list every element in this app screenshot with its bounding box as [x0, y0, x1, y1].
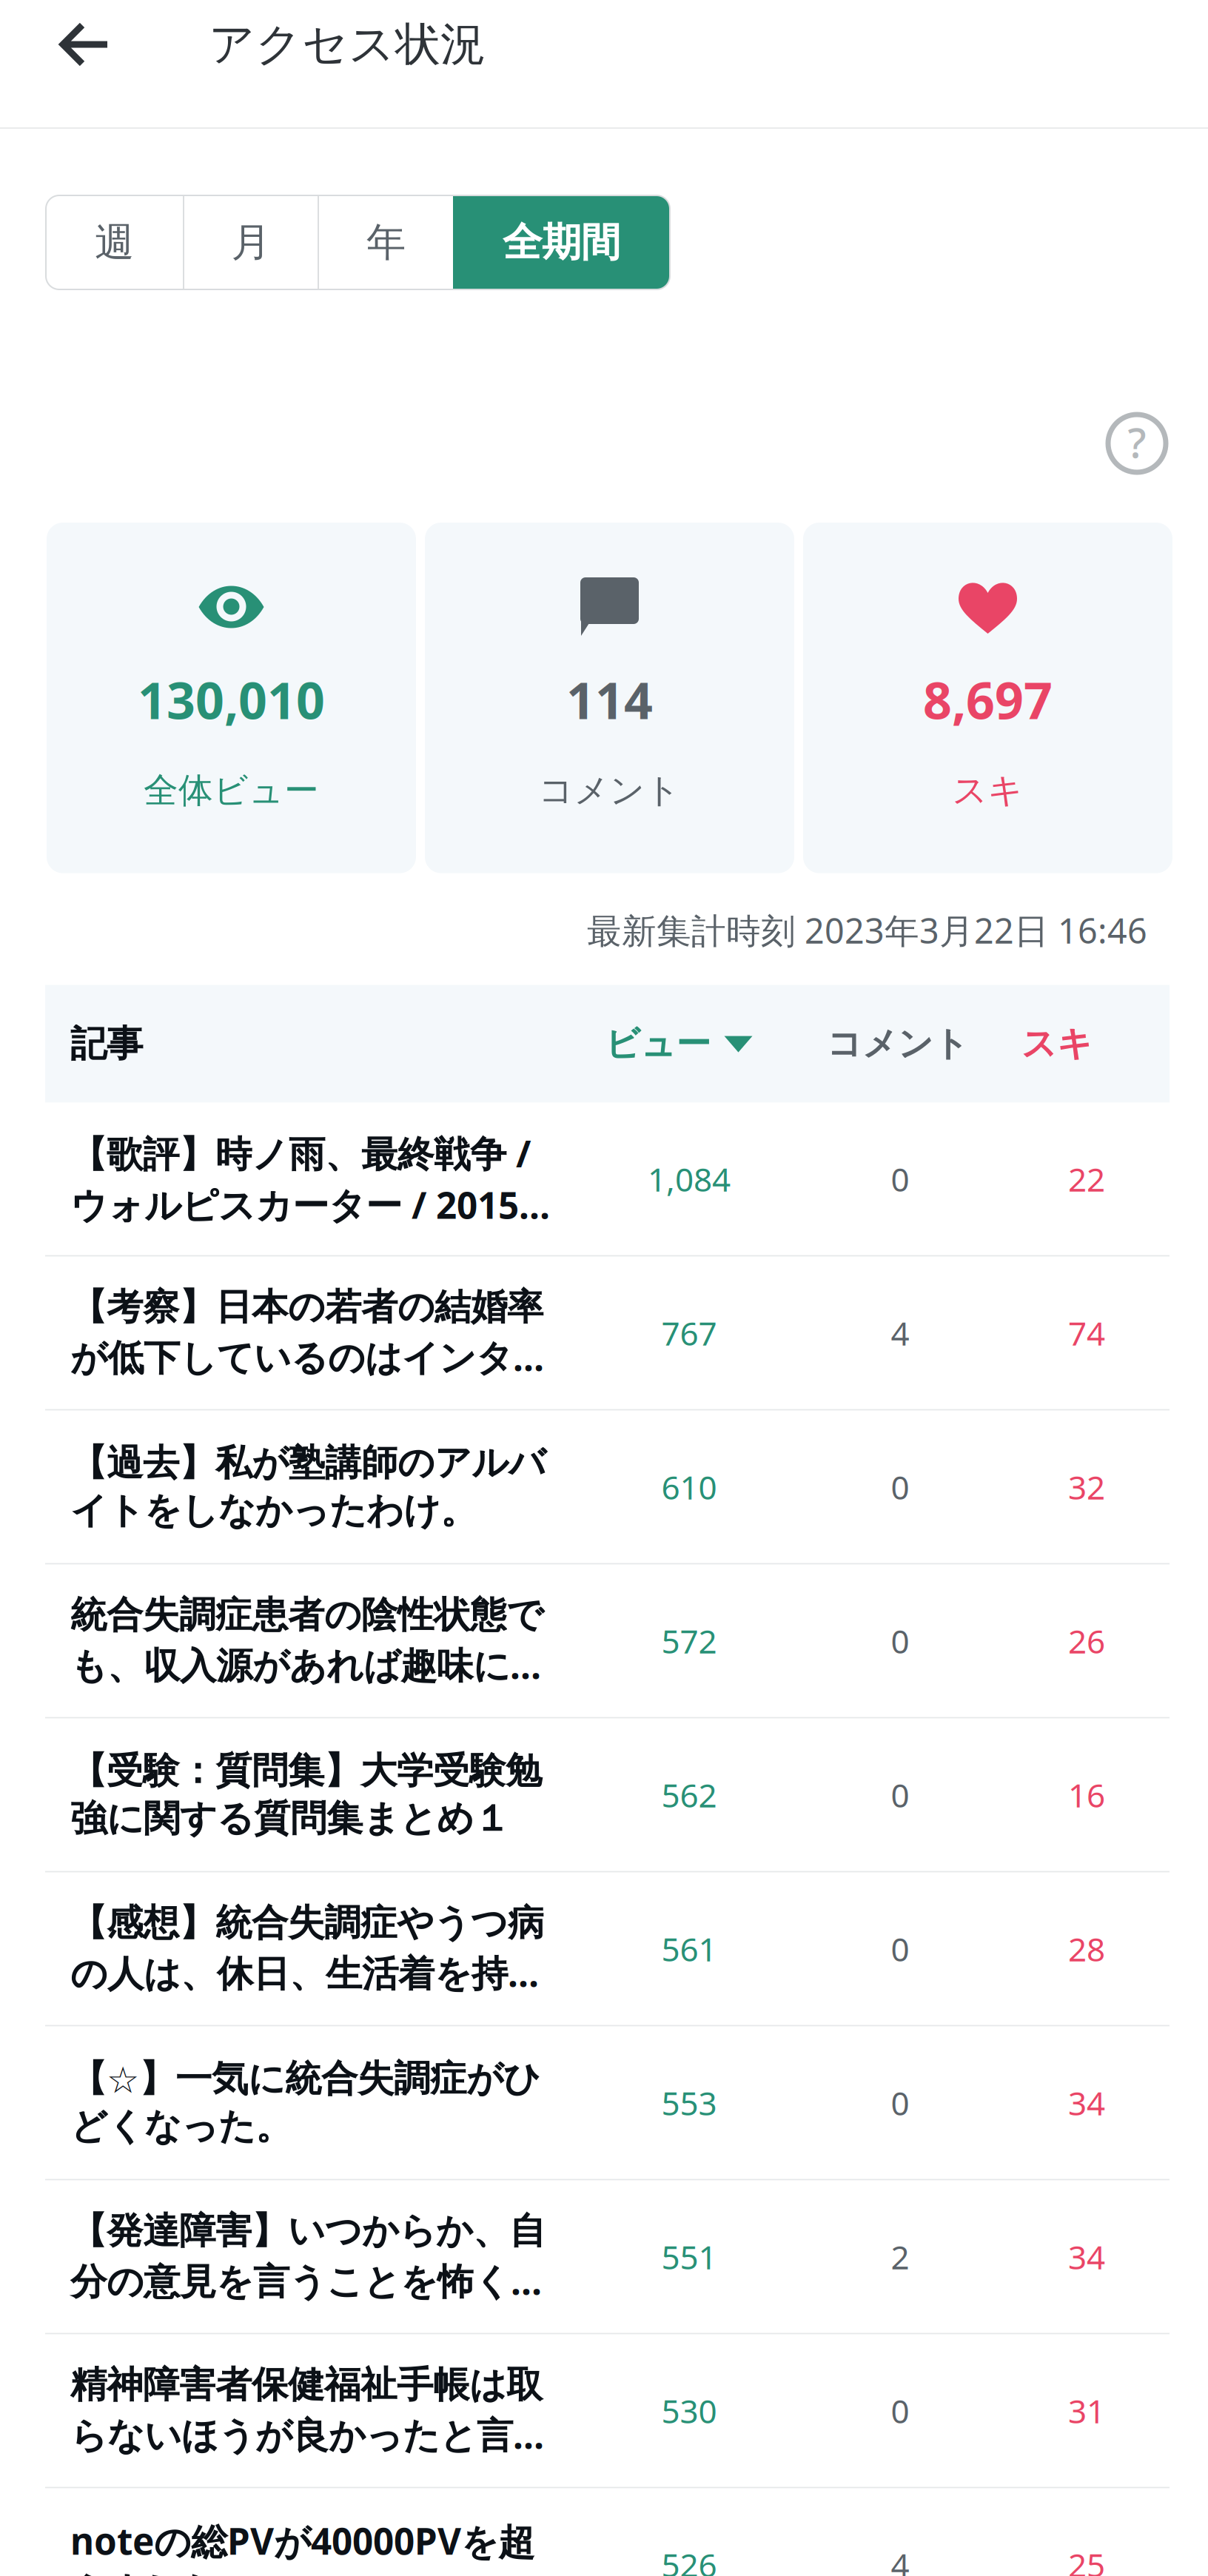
staticText: 全期間: [503, 218, 620, 267]
staticText: 553: [661, 2081, 717, 2124]
staticText: スキ: [952, 769, 1023, 812]
staticText: スキ: [1021, 1023, 1093, 1065]
staticText: 114: [566, 666, 653, 733]
button[interactable]: 【歌評】時ノ雨、最終戦争 / ウォルピスカーター / 2015…: [45, 1103, 1170, 1255]
button[interactable]: noteの総PVが40000PVを超 えました。: [45, 2488, 1170, 2576]
button[interactable]: 【感想】統合失調症やうつ病 の人は、休日、生活着を持…: [45, 1872, 1170, 2025]
staticText: 28: [1068, 1927, 1105, 1970]
staticText: アクセス状況: [209, 17, 486, 72]
staticText: 0: [891, 1927, 909, 1970]
staticText: 【☆】一気に統合失調症がひ どくなった。: [70, 2056, 540, 2149]
staticText: 【受験：質問集】大学受験勉 強に関する質問集まとめ１: [70, 1748, 542, 1841]
staticText: 2: [891, 2235, 909, 2278]
staticText: ビュー: [605, 1023, 711, 1065]
staticText: 【過去】私が塾講師のアルバ イトをしなかったわけ。: [70, 1440, 546, 1533]
button[interactable]: 【受験：質問集】大学受験勉 強に関する質問集まとめ１: [45, 1719, 1170, 1871]
staticText: 0: [891, 2081, 909, 2124]
staticText: 530: [661, 2389, 717, 2432]
staticText: 0: [891, 1773, 909, 1816]
staticText: 34: [1068, 2235, 1105, 2278]
staticText: 25: [1068, 2543, 1105, 2576]
staticText: 【考察】日本の若者の結婚率 が低下しているのはインタ…: [70, 1285, 544, 1381]
button[interactable]: 【考察】日本の若者の結婚率 が低下しているのはインタ…: [45, 1257, 1170, 1409]
staticText: 4: [891, 1311, 909, 1354]
button[interactable]: Back: [0, 0, 209, 89]
staticText: 年: [366, 218, 406, 267]
staticText: 記事: [70, 1021, 143, 1066]
staticText: 130,010: [138, 666, 325, 733]
button[interactable]: 週: [46, 195, 183, 289]
staticText: 統合失調症患者の陰性状態で も、収入源があれば趣味に…: [70, 1593, 543, 1689]
button[interactable]: 精神障害者保健福祉手帳は取 らないほうが良かったと言…: [45, 2334, 1170, 2487]
staticText: 最新集計時刻 2023年3月22日 16:46: [587, 907, 1147, 953]
button[interactable]: 統合失調症患者の陰性状態で も、収入源があれば趣味に…: [45, 1565, 1170, 1717]
staticText: 8,697: [923, 666, 1053, 733]
staticText: ?: [1128, 414, 1146, 469]
staticText: 1,084: [648, 1157, 731, 1201]
staticText: 0: [891, 1465, 909, 1508]
staticText: 26: [1068, 1619, 1105, 1662]
staticText: 34: [1068, 2081, 1105, 2124]
staticText: 572: [661, 1619, 717, 1662]
staticText: 551: [661, 2235, 717, 2278]
staticText: 16: [1068, 1773, 1105, 1816]
staticText: 0: [891, 2389, 909, 2432]
staticText: 526: [661, 2543, 717, 2576]
staticText: 4: [891, 2543, 909, 2576]
button[interactable]: 【発達障害】いつからか、自 分の意見を言うことを怖く…: [45, 2180, 1170, 2333]
staticText: コメント: [827, 1023, 969, 1065]
staticText: 610: [661, 1465, 717, 1508]
staticText: 32: [1068, 1465, 1105, 1508]
staticText: 767: [661, 1311, 717, 1354]
staticText: 全体ビュー: [144, 769, 319, 812]
staticText: 0: [891, 1619, 909, 1662]
button[interactable]: Help: [1101, 408, 1172, 479]
staticText: 0: [891, 1157, 909, 1201]
staticText: 週: [95, 218, 134, 267]
staticText: 精神障害者保健福祉手帳は取 らないほうが良かったと言…: [70, 2362, 544, 2459]
staticText: noteの総PVが40000PVを超 えました。: [70, 2516, 534, 2576]
button[interactable]: 【☆】一気に統合失調症がひ どくなった。: [45, 2026, 1170, 2179]
button[interactable]: 年: [319, 195, 453, 289]
button[interactable]: 【過去】私が塾講師のアルバ イトをしなかったわけ。: [45, 1411, 1170, 1563]
staticText: 562: [661, 1773, 717, 1816]
staticText: 74: [1068, 1311, 1105, 1354]
staticText: 22: [1068, 1157, 1105, 1201]
button[interactable]: 月: [184, 195, 318, 289]
staticText: 月: [231, 218, 271, 267]
staticText: コメント: [538, 769, 681, 812]
staticText: 【発達障害】いつからか、自 分の意見を言うことを怖く…: [70, 2208, 546, 2305]
staticText: 561: [661, 1927, 717, 1970]
button[interactable]: 全期間: [453, 195, 670, 289]
staticText: 【歌評】時ノ雨、最終戦争 / ウォルピスカーター / 2015…: [70, 1129, 550, 1229]
staticText: 【感想】統合失調症やうつ病 の人は、休日、生活着を持…: [70, 1901, 544, 1997]
staticText: 31: [1068, 2389, 1105, 2432]
